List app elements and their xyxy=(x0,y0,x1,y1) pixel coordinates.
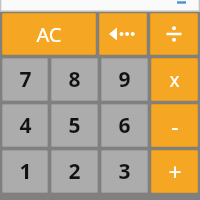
staticText: 6 xyxy=(118,111,131,140)
button[interactable]: + xyxy=(151,150,198,193)
staticText: - xyxy=(171,110,179,141)
button[interactable]: 5 xyxy=(51,104,98,147)
button[interactable]: AC xyxy=(2,13,96,55)
button[interactable]: 6 xyxy=(101,104,148,147)
button[interactable]: Backspace xyxy=(99,13,147,55)
button[interactable]: 9 xyxy=(101,58,148,101)
staticText: 4 xyxy=(19,111,32,140)
staticText: 8 xyxy=(68,65,81,94)
button[interactable]: - xyxy=(151,104,198,147)
button[interactable]: x xyxy=(151,58,198,101)
staticText: + xyxy=(168,156,182,187)
button[interactable]: 7 xyxy=(2,58,48,101)
button[interactable]: 8 xyxy=(51,58,98,101)
staticText: AC xyxy=(36,21,62,48)
staticText: 1 xyxy=(19,157,32,186)
button[interactable]: Divide xyxy=(150,13,198,55)
button[interactable]: 4 xyxy=(2,104,48,147)
staticText: 3 xyxy=(118,157,131,186)
button[interactable]: 1 xyxy=(2,150,48,193)
staticText: 5 xyxy=(68,111,81,140)
button[interactable]: 3 xyxy=(101,150,148,193)
staticText: 9 xyxy=(118,65,131,94)
staticText: x xyxy=(169,67,180,93)
staticText: 7 xyxy=(19,65,32,94)
staticText: 2 xyxy=(68,157,81,186)
button[interactable]: 2 xyxy=(51,150,98,193)
